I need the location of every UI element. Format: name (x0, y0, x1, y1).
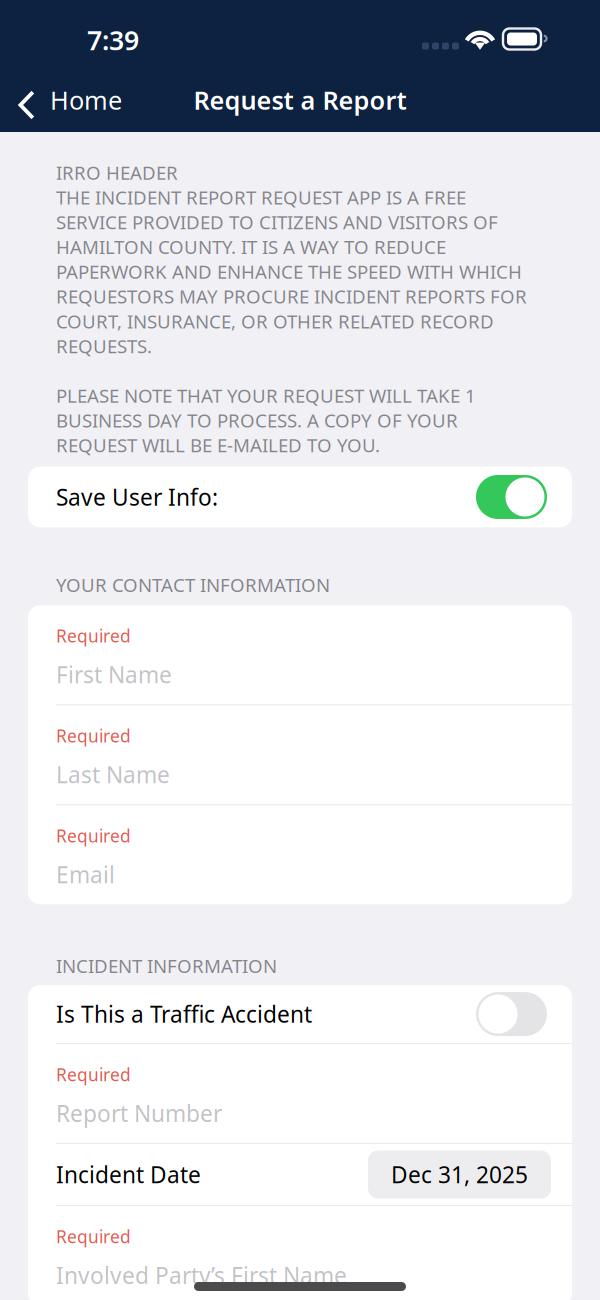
button[interactable]: Save User Info: (28, 466, 572, 527)
staticText: Report Number (56, 1098, 222, 1128)
staticText: Incident Date (56, 1159, 201, 1190)
staticText: Email (56, 859, 115, 889)
staticText: IRRO HEADER THE INCIDENT REPORT REQUEST … (56, 160, 527, 457)
button[interactable]: Is This a Traffic Accident (28, 985, 572, 1043)
staticText: Required (56, 1225, 131, 1248)
staticText: YOUR CONTACT INFORMATION (56, 572, 330, 597)
staticText: Home (50, 83, 122, 117)
staticText: Save User Info: (56, 482, 218, 512)
staticText: Involved Party’s First Name (56, 1260, 347, 1290)
staticText: Is This a Traffic Accident (56, 999, 312, 1029)
staticText: Required (56, 1063, 131, 1086)
button[interactable]: Required (28, 605, 572, 704)
staticText: Required (56, 824, 131, 847)
staticText: Last Name (56, 759, 170, 789)
button[interactable]: Required (28, 1044, 572, 1143)
staticText: First Name (56, 659, 172, 689)
staticText: Dec 31, 2025 (391, 1159, 528, 1190)
staticText: Required (56, 624, 131, 647)
button[interactable]: Required (28, 705, 572, 804)
staticText: Required (56, 724, 131, 747)
staticText: INCIDENT INFORMATION (56, 953, 277, 978)
staticText: Request a Report (193, 83, 406, 117)
button[interactable]: Home (0, 77, 132, 123)
button[interactable]: Required (28, 805, 572, 904)
button[interactable]: Dec 31, 2025 (368, 1151, 551, 1199)
staticText: 7:39 (87, 22, 139, 58)
button[interactable]: Required (28, 1206, 572, 1300)
